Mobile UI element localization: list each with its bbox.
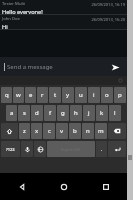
staticText: f xyxy=(49,109,52,117)
button[interactable]: g xyxy=(57,105,69,121)
button[interactable]: Tester Multi xyxy=(0,0,127,14)
button[interactable]: d xyxy=(31,105,43,121)
staticText: x xyxy=(35,127,39,135)
staticText: l xyxy=(114,109,116,117)
staticText: s xyxy=(23,109,26,117)
button[interactable]: j xyxy=(83,105,95,121)
button[interactable]: t xyxy=(49,87,61,103)
staticText: c xyxy=(48,127,51,135)
staticText: a xyxy=(10,109,14,117)
button[interactable]: i xyxy=(88,87,100,103)
button[interactable]: Send a message xyxy=(0,57,127,76)
staticText: z xyxy=(23,127,26,135)
staticText: d xyxy=(35,109,39,117)
button[interactable]: m xyxy=(95,123,107,139)
button[interactable]: Back xyxy=(0,173,43,200)
button[interactable]: John Doe xyxy=(0,15,127,29)
staticText: English (US) xyxy=(61,147,81,152)
staticText: q xyxy=(5,91,9,99)
button[interactable]: v xyxy=(56,123,68,139)
staticText: 26/09/2013, 16:19 xyxy=(91,2,125,7)
staticText: u xyxy=(79,91,83,99)
staticText: w xyxy=(16,91,21,99)
button[interactable]: . xyxy=(96,141,107,157)
staticText: Tester Multi xyxy=(2,1,26,7)
button[interactable]: u xyxy=(75,87,87,103)
button[interactable]: s xyxy=(18,105,30,121)
staticText: o xyxy=(105,91,109,99)
staticText: m xyxy=(98,127,104,135)
button[interactable]: Home xyxy=(43,173,85,200)
button[interactable]: r xyxy=(37,87,48,103)
staticText: Send a message xyxy=(7,63,53,71)
button[interactable]: w xyxy=(13,87,24,103)
button[interactable]: Enter xyxy=(108,141,126,157)
button[interactable]: p xyxy=(114,87,126,103)
button[interactable]: Backspace xyxy=(108,123,126,139)
staticText: g xyxy=(61,109,65,117)
staticText: ?123 xyxy=(6,147,15,152)
staticText: r xyxy=(41,91,44,99)
staticText: k xyxy=(100,109,104,117)
staticText: Hi xyxy=(2,23,8,29)
button[interactable]: k xyxy=(96,105,108,121)
button[interactable]: Voice input xyxy=(21,141,33,157)
staticText: . xyxy=(101,146,103,153)
staticText: John Doe xyxy=(2,16,20,22)
staticText: y xyxy=(66,91,70,99)
button[interactable]: ?123 xyxy=(1,141,20,157)
staticText: e xyxy=(29,91,33,99)
button[interactable]: l xyxy=(109,105,121,121)
staticText: j xyxy=(88,109,90,117)
button[interactable]: a xyxy=(6,105,17,121)
staticText: i xyxy=(93,91,95,99)
button[interactable]: Send xyxy=(107,59,123,75)
staticText: n xyxy=(86,127,90,135)
button[interactable]: e xyxy=(25,87,36,103)
staticText: p xyxy=(118,91,122,99)
button[interactable]: x xyxy=(31,123,42,139)
button[interactable]: b xyxy=(69,123,81,139)
button[interactable]: c xyxy=(43,123,55,139)
button[interactable]: z xyxy=(19,123,30,139)
button[interactable]: Keyboard settings xyxy=(117,77,124,84)
button[interactable]: y xyxy=(62,87,74,103)
staticText: Hello everyone! xyxy=(2,8,43,14)
button[interactable]: h xyxy=(70,105,82,121)
button[interactable]: Emoji xyxy=(34,141,46,157)
button[interactable]: Shift xyxy=(1,123,18,139)
button[interactable]: f xyxy=(44,105,56,121)
button[interactable]: n xyxy=(82,123,94,139)
staticText: v xyxy=(60,127,64,135)
button[interactable]: o xyxy=(101,87,113,103)
staticText: h xyxy=(74,109,78,117)
button[interactable]: Recent apps xyxy=(85,173,127,200)
staticText: 26/09/2013, 16:20 xyxy=(91,17,125,22)
staticText: t xyxy=(54,91,57,99)
button[interactable]: q xyxy=(1,87,12,103)
staticText: b xyxy=(73,127,77,135)
